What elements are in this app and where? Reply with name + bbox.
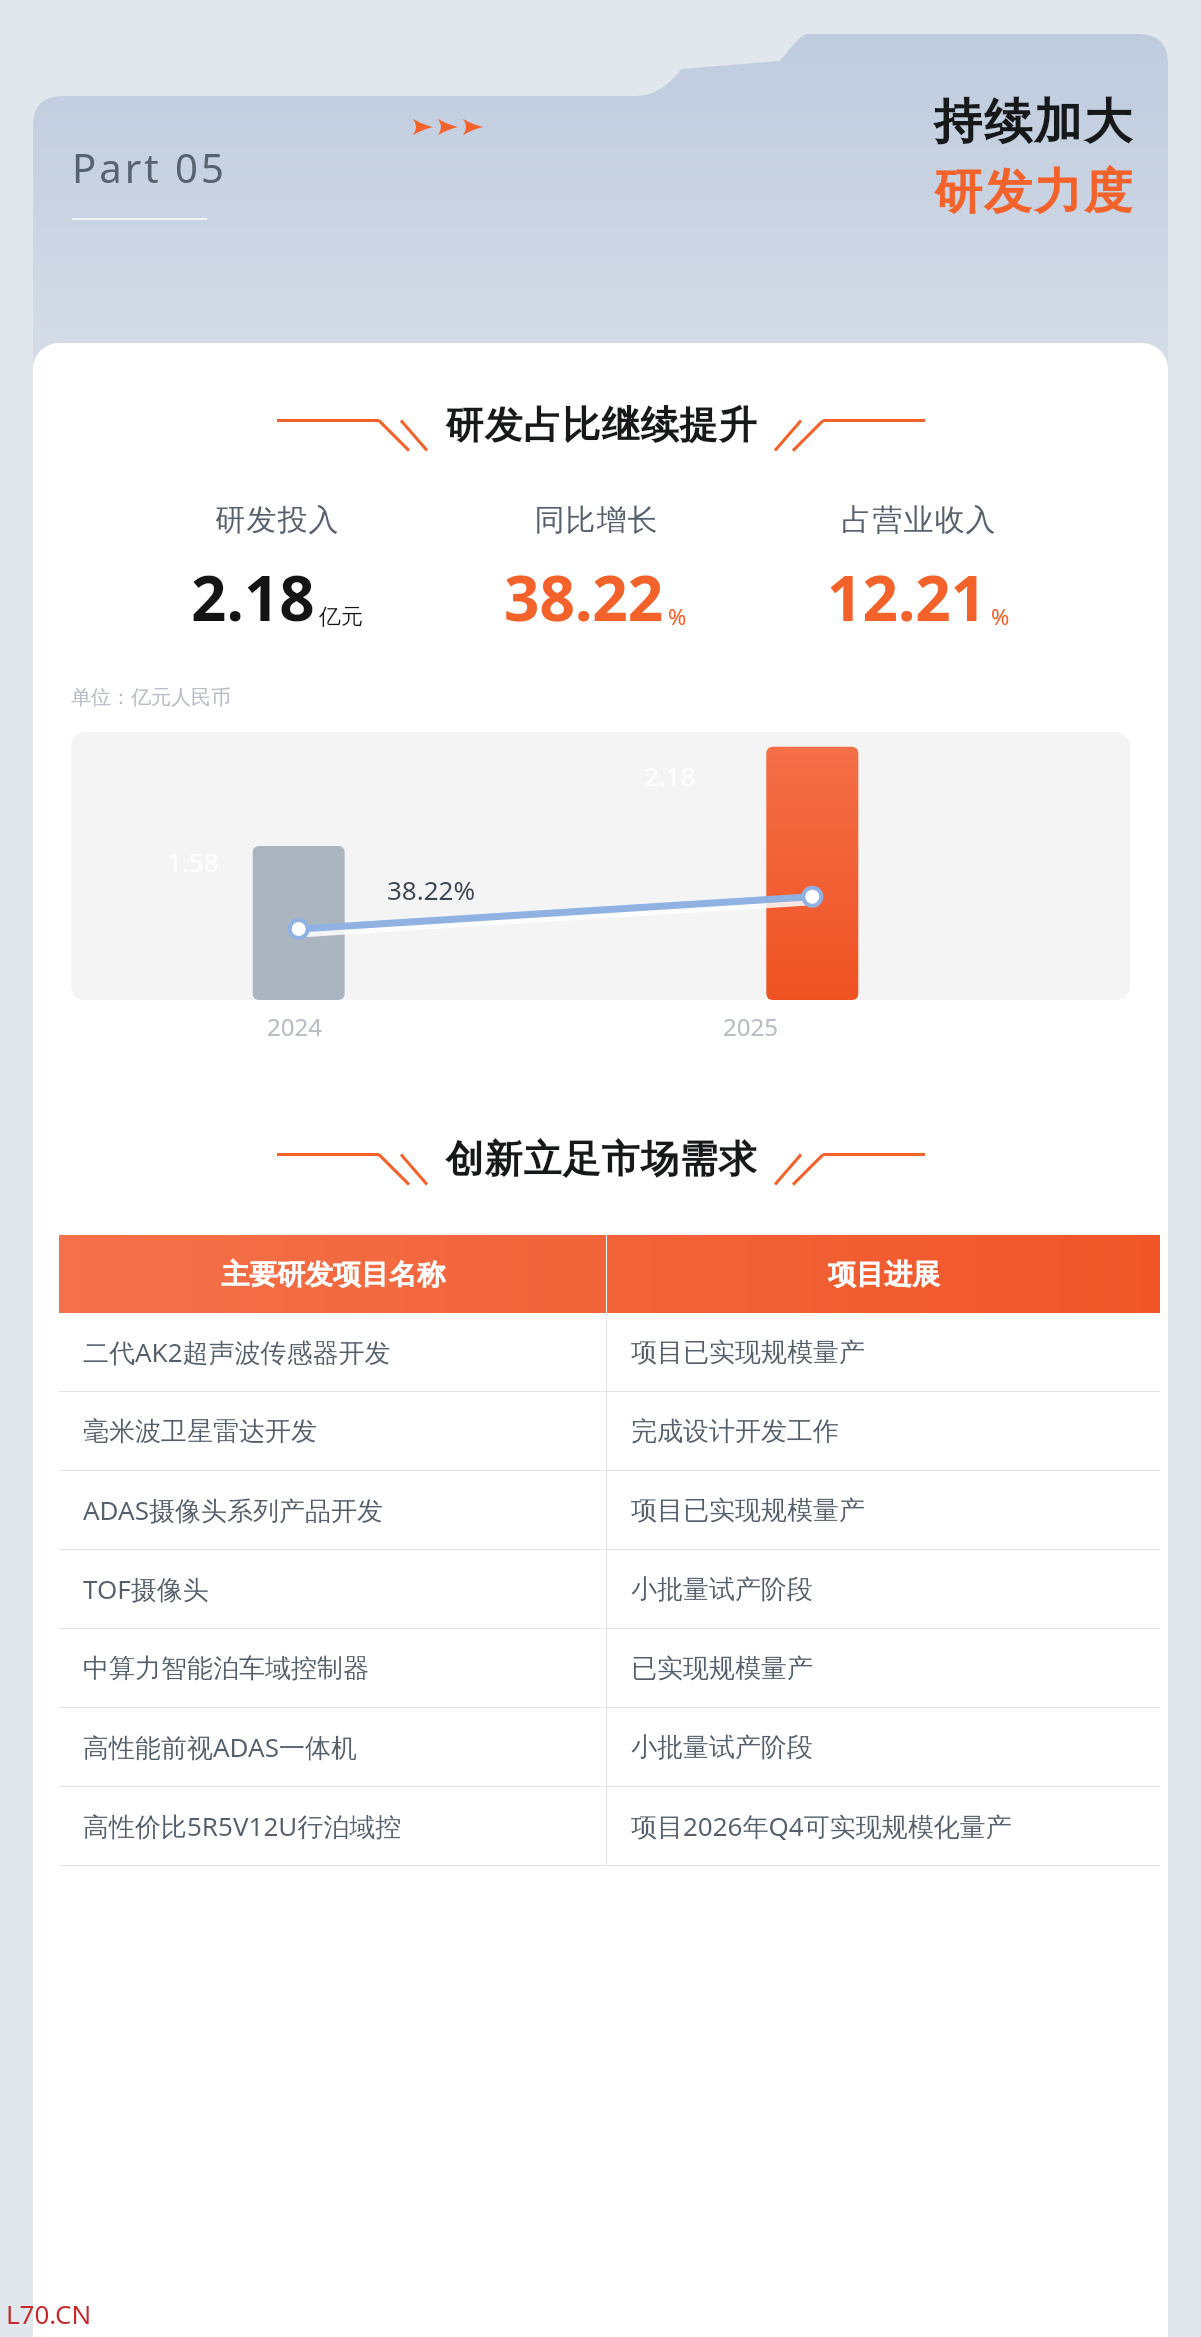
staticText: 研发投入 [215, 501, 339, 539]
staticText: 高性能前视ADAS一体机 [83, 1729, 357, 1765]
staticText: L70.CN [6, 2296, 92, 2331]
staticText: 2.18 [191, 555, 315, 639]
staticText: 二代AK2超声波传感器开发 [83, 1334, 391, 1370]
staticText: 项目2026年Q4可实现规模化量产 [631, 1808, 1012, 1844]
staticText: 已实现规模量产 [631, 1652, 813, 1685]
button[interactable]: ADAS摄像头系列产品开发 [59, 1471, 1160, 1549]
staticText: 创新立足市场需求 [445, 1135, 757, 1183]
staticText: Part 05 [72, 140, 227, 194]
staticText: TOF摄像头 [83, 1571, 209, 1607]
staticText: 项目已实现规模量产 [631, 1494, 865, 1527]
button[interactable]: 主要研发项目名称 [59, 1235, 1160, 1313]
staticText: 主要研发项目名称 [221, 1257, 445, 1292]
button[interactable]: 毫米波卫星雷达开发 [59, 1392, 1160, 1470]
staticText: 单位：亿元人民币 [71, 685, 231, 710]
button[interactable]: TOF摄像头 [59, 1550, 1160, 1628]
staticText: % [668, 601, 687, 631]
staticText: 中算力智能泊车域控制器 [83, 1652, 369, 1685]
staticText: 项目已实现规模量产 [631, 1336, 865, 1369]
staticText: 12.21 [827, 555, 987, 639]
staticText: 同比增长 [534, 501, 658, 539]
staticText: 1.58 [167, 844, 219, 879]
staticText: 小批量试产阶段 [631, 1731, 813, 1764]
staticText: 研发力度 [933, 162, 1133, 222]
button[interactable]: 中算力智能泊车域控制器 [59, 1629, 1160, 1707]
staticText: 完成设计开发工作 [631, 1415, 839, 1448]
staticText: 亿元 [319, 603, 363, 631]
staticText: 2025 [723, 1010, 778, 1043]
staticText: 38.22 [504, 555, 664, 639]
staticText: ADAS摄像头系列产品开发 [83, 1492, 383, 1528]
staticText: 2.18 [644, 758, 696, 793]
staticText: 持续加大 [933, 92, 1133, 152]
staticText: 项目进展 [828, 1257, 940, 1292]
staticText: 2024 [267, 1010, 322, 1043]
staticText: 占营业收入 [841, 501, 996, 539]
staticText: 38.22% [387, 872, 476, 907]
button[interactable]: 高性能前视ADAS一体机 [59, 1708, 1160, 1786]
button[interactable]: 高性价比5R5V12U行泊域控 [59, 1787, 1160, 1865]
staticText: 研发占比继续提升 [445, 401, 757, 449]
staticText: 小批量试产阶段 [631, 1573, 813, 1606]
staticText: % [991, 601, 1010, 631]
button[interactable]: 二代AK2超声波传感器开发 [59, 1313, 1160, 1391]
staticText: 毫米波卫星雷达开发 [83, 1415, 317, 1448]
staticText: 高性价比5R5V12U行泊域控 [83, 1808, 402, 1844]
